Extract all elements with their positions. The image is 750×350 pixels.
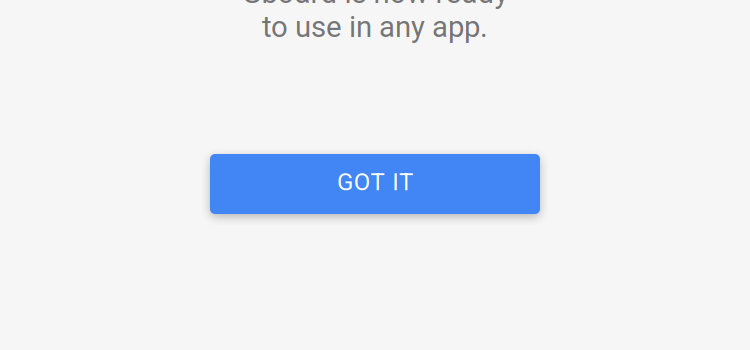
staticText: Gboard is now ready [241, 0, 508, 10]
button[interactable]: GOT IT [210, 154, 540, 214]
staticText: GOT IT [337, 168, 413, 196]
staticText: to use in any app. [262, 10, 488, 44]
